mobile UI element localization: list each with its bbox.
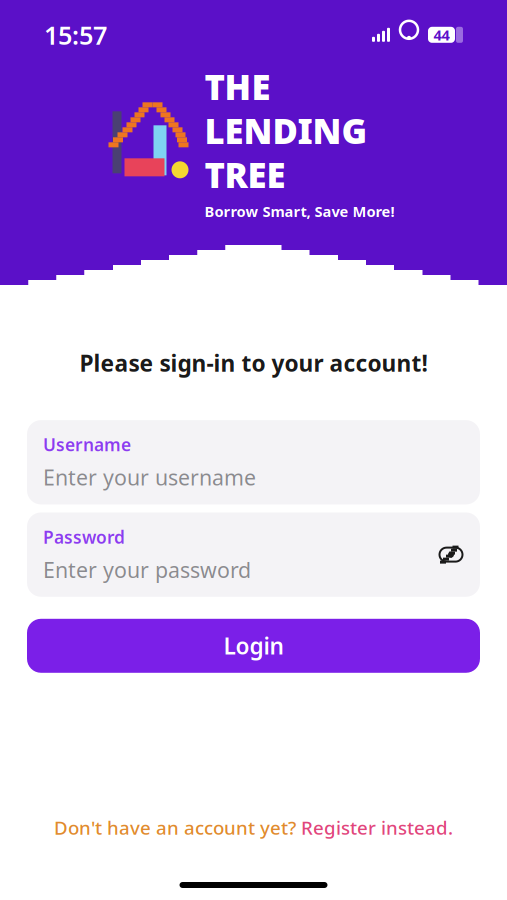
staticText: Password (43, 525, 125, 548)
staticText: Username (43, 433, 131, 456)
staticText: Enter your username (43, 463, 256, 491)
staticText: TREE (204, 152, 285, 198)
button[interactable]: Username (27, 420, 480, 504)
staticText: Borrow Smart, Save More! (204, 202, 394, 221)
staticText: THE (204, 63, 270, 109)
staticText: LENDING (204, 108, 367, 154)
staticText: Register instead. (301, 815, 453, 840)
staticText: Login (223, 631, 283, 661)
staticText: 15:57 (44, 18, 107, 52)
button[interactable]: Don't have an account yet? (30, 807, 477, 848)
staticText: Don't have an account yet? (54, 815, 296, 840)
staticText: 44 (433, 25, 449, 45)
staticText: Enter your password (43, 555, 251, 584)
button[interactable]: Login (27, 619, 480, 673)
button[interactable]: Password (27, 512, 480, 597)
staticText: Please sign-in to your account! (79, 348, 427, 378)
